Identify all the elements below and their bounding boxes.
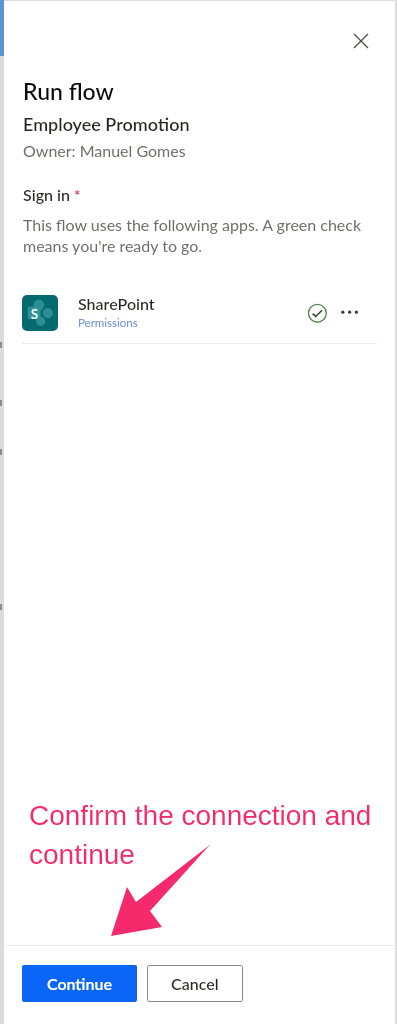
button[interactable]: Cancel	[147, 965, 243, 1002]
staticText: Permissions	[78, 314, 138, 330]
staticText: S	[31, 306, 39, 319]
staticText: Employee Promotion	[23, 113, 190, 135]
staticText: This flow uses the following apps. A gre…	[23, 213, 379, 255]
button[interactable]: Close	[343, 24, 379, 58]
button[interactable]: Continue	[22, 965, 137, 1002]
button[interactable]: S	[22, 287, 379, 339]
staticText: Continue	[47, 974, 112, 993]
other: Connected	[307, 303, 328, 324]
staticText: Owner: Manuel Gomes	[23, 140, 186, 161]
staticText: SharePoint	[78, 294, 155, 314]
button[interactable]: More options	[336, 304, 362, 321]
staticText: Confirm the connection and continue	[29, 794, 379, 872]
staticText: Sign in *	[23, 184, 81, 205]
staticText: Run flow	[23, 77, 114, 105]
staticText: Cancel	[171, 974, 219, 993]
